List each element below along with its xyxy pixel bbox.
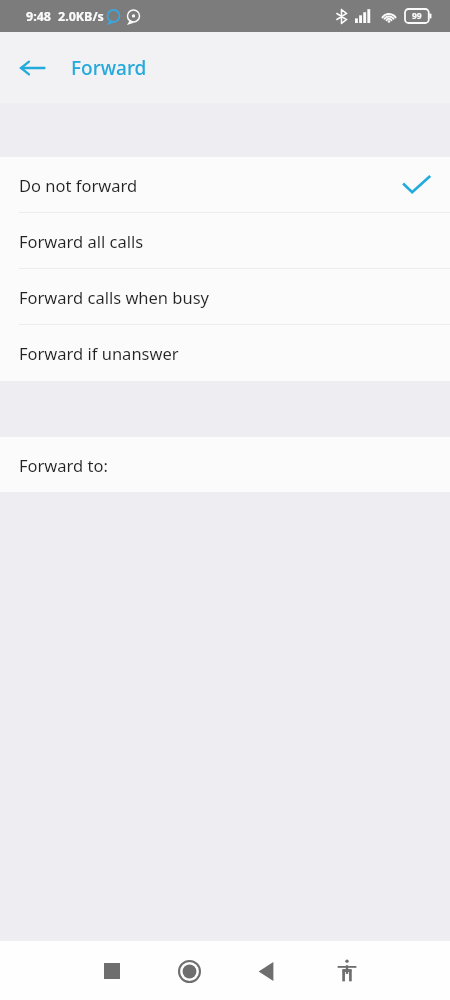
- button[interactable]: Do not forward: [0, 157, 450, 213]
- staticText: Forward calls when busy: [19, 286, 210, 308]
- staticText: 9:48: [26, 8, 51, 25]
- button[interactable]: Back: [242, 947, 290, 995]
- button[interactable]: Forward calls when busy: [0, 269, 450, 325]
- button[interactable]: Accessibility: [323, 947, 371, 995]
- staticText: Forward all calls: [19, 230, 144, 252]
- button[interactable]: Home: [165, 947, 213, 995]
- staticText: 99: [412, 10, 422, 22]
- staticText: Forward: [71, 55, 147, 81]
- staticText: Forward if unanswer: [19, 342, 179, 364]
- staticText: Do not forward: [19, 174, 138, 196]
- button[interactable]: Forward to:: [0, 437, 450, 492]
- button[interactable]: Forward all calls: [0, 213, 450, 269]
- staticText: 2.0KB/s: [58, 8, 104, 25]
- button[interactable]: Forward if unanswer: [0, 325, 450, 381]
- button[interactable]: Back: [10, 46, 54, 90]
- staticText: Forward to:: [19, 454, 108, 476]
- button[interactable]: Recent apps: [88, 947, 136, 995]
